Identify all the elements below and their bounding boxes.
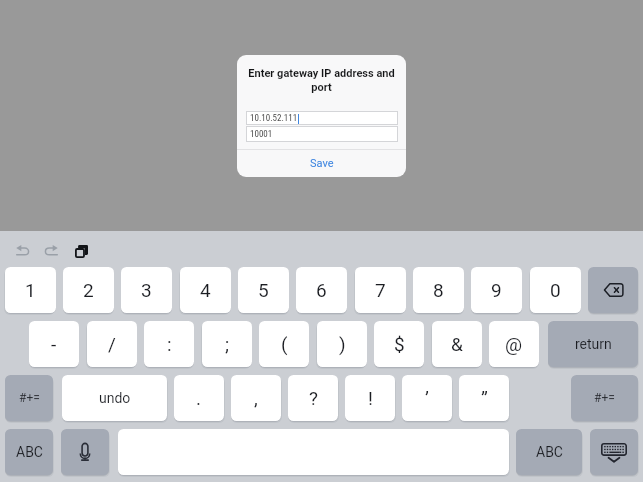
staticText: 4 xyxy=(200,279,211,301)
staticText: 0 xyxy=(550,279,561,301)
staticText: @ xyxy=(505,333,523,355)
button[interactable]: . xyxy=(174,375,224,421)
button[interactable]: #+= xyxy=(571,375,638,421)
button[interactable]: ABC xyxy=(516,429,582,475)
staticText: Save xyxy=(310,157,334,170)
button[interactable]: Redo xyxy=(38,238,64,264)
staticText: ? xyxy=(309,387,318,409)
staticText: return xyxy=(575,336,612,352)
staticText: ) xyxy=(339,333,346,355)
button[interactable]: , xyxy=(231,375,281,421)
button[interactable]: 10001 xyxy=(247,127,397,141)
button[interactable]: : xyxy=(144,321,194,367)
staticText: 10.10.52.111 xyxy=(250,113,298,124)
staticText: ! xyxy=(368,387,373,409)
staticText: $ xyxy=(394,333,405,355)
staticText: 5 xyxy=(258,279,269,301)
staticText: 6 xyxy=(316,279,327,301)
staticText: ’ xyxy=(425,387,429,409)
button[interactable]: $ xyxy=(374,321,424,367)
staticText: 10001 xyxy=(250,129,273,140)
button[interactable]: ; xyxy=(202,321,252,367)
staticText: 1 xyxy=(25,279,36,301)
staticText: , xyxy=(254,387,258,409)
button[interactable]: Undo xyxy=(10,238,36,264)
button[interactable]: 10.10.52.111 xyxy=(247,112,397,124)
staticText: ; xyxy=(225,333,230,355)
button[interactable]: ) xyxy=(317,321,367,367)
button[interactable]: ? xyxy=(288,375,338,421)
staticText: 2 xyxy=(83,279,94,301)
button[interactable]: return xyxy=(548,321,638,367)
staticText: : xyxy=(167,333,172,355)
button[interactable]: 5 xyxy=(238,267,289,313)
staticText: 8 xyxy=(433,279,444,301)
staticText: . xyxy=(196,387,202,409)
button[interactable]: / xyxy=(87,321,137,367)
button[interactable]: Save xyxy=(237,150,406,177)
button[interactable]: Paste xyxy=(68,238,94,264)
button[interactable]: ABC xyxy=(5,429,53,475)
button[interactable]: - xyxy=(29,321,79,367)
button[interactable]: ( xyxy=(259,321,309,367)
button[interactable]: 8 xyxy=(413,267,464,313)
button[interactable]: ! xyxy=(345,375,395,421)
button[interactable]: 0 xyxy=(530,267,581,313)
button[interactable]: ’ xyxy=(402,375,452,421)
staticText: undo xyxy=(99,390,131,406)
button[interactable]: 1 xyxy=(5,267,56,313)
staticText: - xyxy=(51,333,57,355)
button[interactable]: 7 xyxy=(355,267,406,313)
staticText: / xyxy=(108,333,116,355)
button[interactable]: ” xyxy=(459,375,509,421)
button[interactable]: 6 xyxy=(296,267,347,313)
button[interactable]: Microphone xyxy=(61,429,109,475)
staticText: ” xyxy=(481,387,488,409)
button[interactable]: Backspace xyxy=(588,267,638,313)
button[interactable]: @ xyxy=(489,321,539,367)
staticText: 9 xyxy=(491,279,502,301)
staticText: ( xyxy=(281,333,288,355)
button[interactable]: undo xyxy=(62,375,167,421)
button[interactable]: 9 xyxy=(471,267,522,313)
button[interactable]: #+= xyxy=(5,375,53,421)
staticText: #+= xyxy=(19,391,40,405)
button[interactable]: 2 xyxy=(63,267,114,313)
button[interactable]: Hide keyboard xyxy=(590,429,638,475)
staticText: #+= xyxy=(594,391,615,405)
staticText: Enter gateway IP address and port xyxy=(245,67,398,93)
button[interactable]: 3 xyxy=(121,267,172,313)
staticText: & xyxy=(451,333,463,355)
staticText: 7 xyxy=(375,279,386,301)
staticText: 3 xyxy=(141,279,152,301)
staticText: ABC xyxy=(536,444,563,460)
staticText: ABC xyxy=(16,444,43,460)
button[interactable]: & xyxy=(432,321,482,367)
button[interactable]: 4 xyxy=(180,267,231,313)
